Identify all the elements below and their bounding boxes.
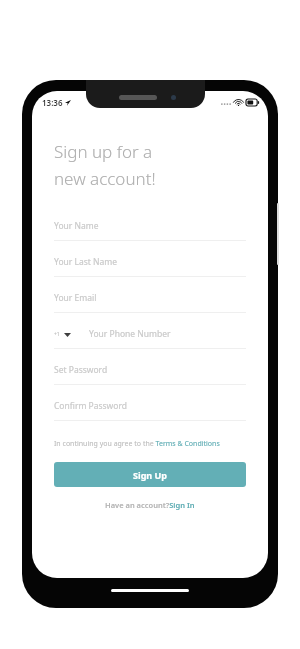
button[interactable]: Set Password — [54, 356, 246, 392]
staticText: Your Phone Number — [89, 328, 171, 340]
staticText: Your Email — [54, 292, 97, 304]
button[interactable]: Select country code — [54, 331, 71, 338]
button[interactable]: Sign Up — [54, 462, 246, 487]
staticText: new account! — [54, 167, 156, 190]
staticText: +1 — [54, 331, 60, 338]
staticText: Sign Up — [133, 469, 168, 481]
button[interactable]: Have an account?Sign In — [105, 500, 195, 510]
staticText: Your Name — [54, 220, 99, 232]
staticText: Sign up for a — [54, 140, 153, 163]
button[interactable]: Your Email — [54, 284, 246, 320]
staticText: Your Last Name — [54, 256, 118, 268]
button[interactable]: Your Name — [54, 212, 246, 248]
button[interactable]: Confirm Password — [54, 392, 246, 428]
button[interactable]: In continuing you agree to the Terms & C… — [54, 439, 246, 449]
staticText: Set Password — [54, 364, 108, 376]
staticText: 13:36 — [42, 97, 63, 108]
button[interactable]: Your Last Name — [54, 248, 246, 284]
staticText: Confirm Password — [54, 400, 127, 412]
